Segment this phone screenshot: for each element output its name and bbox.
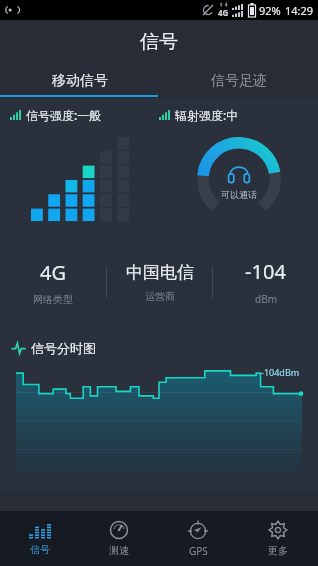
button[interactable]: 测速: [79, 511, 158, 566]
staticText: -104: [245, 258, 286, 285]
staticText: 更多: [268, 544, 288, 557]
staticText: 信号足迹: [211, 72, 267, 90]
staticText: GPS: [189, 544, 208, 558]
button[interactable]: 信号: [0, 511, 79, 566]
staticText: 92%: [259, 3, 281, 18]
staticText: 信号: [140, 30, 178, 54]
button[interactable]: 更多: [238, 511, 318, 566]
button[interactable]: 4G: [0, 259, 106, 306]
button[interactable]: 信号足迹: [159, 64, 318, 97]
staticText: 运营商: [145, 290, 175, 303]
staticText: 信号强度:一般: [26, 107, 102, 123]
button[interactable]: 中国电信: [107, 262, 212, 303]
staticText: 网络类型: [33, 293, 73, 306]
staticText: dBm: [255, 292, 277, 306]
staticText: 中国电信: [126, 262, 194, 283]
staticText: 14:29: [285, 3, 314, 18]
staticText: 4G: [218, 7, 229, 18]
staticText: 信号: [30, 543, 50, 556]
staticText: 移动信号: [52, 72, 108, 90]
staticText: 可以通话: [221, 189, 257, 200]
button[interactable]: GPS: [158, 511, 238, 566]
staticText: -104dBm: [261, 366, 300, 378]
staticText: 信号分时图: [31, 340, 96, 356]
staticText: 辐射强度:中: [175, 107, 239, 123]
button[interactable]: 移动信号: [0, 64, 159, 97]
staticText: 测速: [109, 544, 129, 557]
staticText: 4G: [40, 259, 66, 286]
button[interactable]: -104: [213, 258, 318, 306]
